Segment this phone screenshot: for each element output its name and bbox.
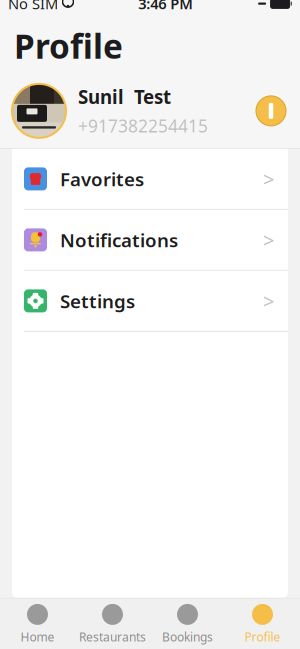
button[interactable]: Notifications	[12, 210, 288, 270]
staticText: Profile	[14, 24, 123, 68]
staticText: +917382254415	[78, 114, 208, 137]
staticText: Notifications	[60, 227, 178, 252]
staticText: Settings	[60, 288, 135, 313]
staticText: >	[263, 166, 274, 192]
button[interactable]: Profile	[225, 602, 300, 646]
button[interactable]: Settings	[12, 271, 288, 331]
staticText: Bookings	[162, 629, 213, 645]
staticText: >	[263, 288, 274, 314]
staticText: 3:46 PM	[138, 0, 193, 13]
button[interactable]: Edit profile	[255, 95, 287, 127]
staticText: Sunil Test	[78, 84, 171, 109]
button[interactable]: Bookings	[150, 602, 225, 646]
staticText: Favorites	[60, 166, 144, 191]
staticText: >	[263, 227, 274, 253]
staticText: Home	[20, 629, 54, 645]
staticText: Profile	[244, 629, 280, 645]
staticText: No SIM	[8, 0, 58, 13]
button[interactable]: Favorites	[12, 149, 288, 209]
button[interactable]: Restaurants	[75, 602, 150, 646]
staticText: Restaurants	[79, 629, 146, 645]
button[interactable]: Home	[0, 602, 75, 646]
